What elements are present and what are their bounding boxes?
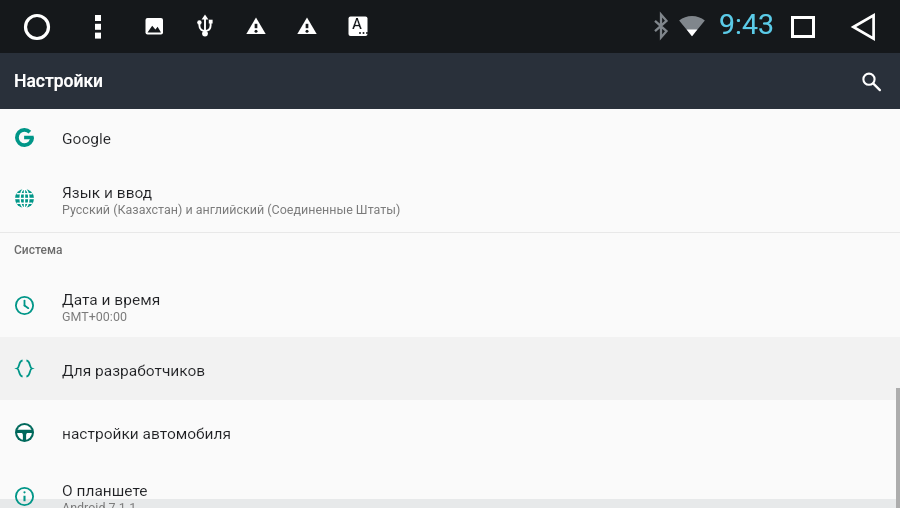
- button[interactable]: Дата и время: [0, 273, 900, 337]
- button[interactable]: Google: [0, 109, 900, 165]
- button[interactable]: настройки автомобиля: [0, 400, 900, 464]
- staticText: О планшете: [62, 482, 148, 500]
- staticText: Google: [62, 130, 111, 148]
- staticText: 9:43: [719, 8, 774, 41]
- button[interactable]: Язык и ввод: [0, 165, 900, 232]
- button[interactable]: Search: [848, 59, 892, 103]
- staticText: GMT+00:00: [62, 309, 127, 324]
- staticText: Настройки: [14, 71, 104, 92]
- staticText: A: [352, 15, 362, 33]
- button[interactable]: Recent apps: [779, 0, 826, 53]
- button[interactable]: Для разработчиков: [0, 337, 900, 400]
- button[interactable]: More options: [78, 0, 118, 53]
- staticText: Дата и время: [62, 291, 161, 309]
- staticText: настройки автомобиля: [62, 425, 231, 443]
- staticText: Система: [14, 243, 63, 257]
- button[interactable]: О планшете: [0, 464, 900, 508]
- staticText: Язык и ввод: [62, 184, 153, 202]
- staticText: Android 7.1.1: [62, 500, 137, 508]
- staticText: Для разработчиков: [62, 362, 206, 380]
- staticText: Русский (Казахстан) и английский (Соедин…: [62, 202, 401, 217]
- button[interactable]: Home: [14, 0, 60, 53]
- button[interactable]: Back: [840, 0, 886, 53]
